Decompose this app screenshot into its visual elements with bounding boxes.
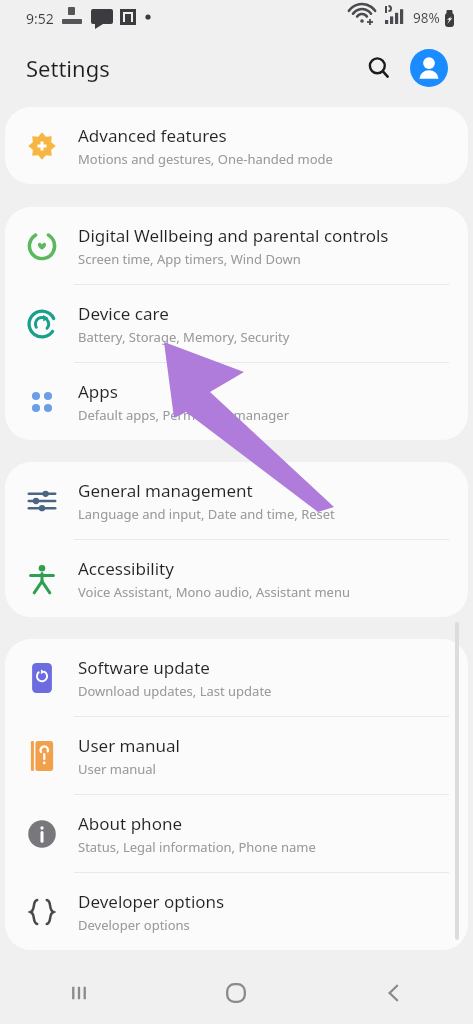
button[interactable]: About phone bbox=[5, 795, 468, 872]
button[interactable]: Accessibility bbox=[5, 540, 468, 617]
staticText: User manual bbox=[78, 760, 156, 778]
button[interactable]: User manual bbox=[5, 717, 468, 794]
staticText: Status, Legal information, Phone name bbox=[78, 838, 316, 856]
staticText: Settings bbox=[26, 53, 110, 83]
staticText: Download updates, Last update bbox=[78, 682, 272, 700]
button[interactable]: Digital Wellbeing and parental controls bbox=[5, 207, 468, 284]
button[interactable]: General management bbox=[5, 462, 468, 539]
staticText: Battery, Storage, Memory, Security bbox=[78, 328, 290, 346]
staticText: Screen time, App timers, Wind Down bbox=[78, 250, 301, 268]
staticText: General management bbox=[78, 479, 253, 502]
staticText: Accessibility bbox=[78, 557, 174, 580]
button[interactable]: Recents bbox=[0, 962, 157, 1024]
button[interactable]: Advanced features bbox=[5, 107, 468, 184]
staticText: 98% bbox=[413, 9, 440, 27]
staticText: Developer options bbox=[78, 916, 190, 934]
staticText: Language and input, Date and time, Reset bbox=[78, 505, 335, 523]
button[interactable]: Account bbox=[407, 46, 451, 90]
staticText: Voice Assistant, Mono audio, Assistant m… bbox=[78, 583, 350, 601]
staticText: Apps bbox=[78, 380, 118, 403]
staticText: Software update bbox=[78, 656, 210, 679]
staticText: Advanced features bbox=[78, 124, 227, 147]
button[interactable]: Device care bbox=[5, 285, 468, 362]
staticText: User manual bbox=[78, 734, 180, 757]
staticText: Digital Wellbeing and parental controls bbox=[78, 224, 389, 247]
button[interactable]: Software update bbox=[5, 639, 468, 716]
button[interactable]: Developer options bbox=[5, 873, 468, 950]
button[interactable]: Apps bbox=[5, 363, 468, 440]
staticText: About phone bbox=[78, 812, 183, 835]
button[interactable]: Search bbox=[357, 46, 401, 90]
staticText: 9:52 bbox=[26, 9, 54, 28]
button[interactable]: Home bbox=[157, 962, 315, 1024]
button[interactable]: Back bbox=[315, 962, 473, 1024]
staticText: Device care bbox=[78, 302, 169, 325]
staticText: Default apps, Permission manager bbox=[78, 406, 290, 424]
staticText: Motions and gestures, One-handed mode bbox=[78, 150, 333, 168]
staticText: Developer options bbox=[78, 890, 225, 913]
